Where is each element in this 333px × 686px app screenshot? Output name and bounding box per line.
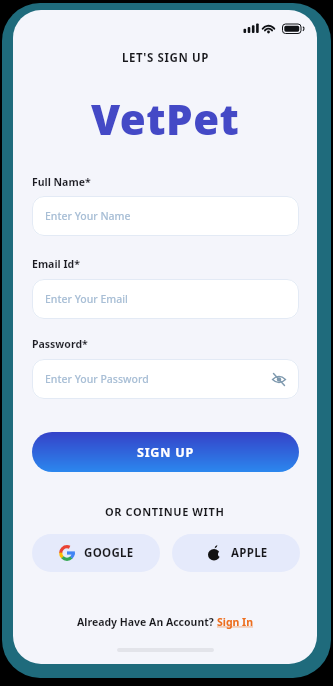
staticText: Already Have An Account? [77,615,217,629]
staticText: Enter Your Name [45,209,131,223]
staticText: GOOGLE [84,545,134,561]
staticText: LET'S SIGN UP [122,50,209,66]
staticText: APPLE [231,545,268,561]
staticText: SIGN UP [137,444,195,461]
staticText: Full Name* [32,175,91,189]
staticText: Password* [32,337,88,351]
staticText: Email Id* [32,257,80,271]
button[interactable]: Enter Your Email [32,279,299,319]
button[interactable]: SIGN UP [32,432,299,472]
staticText: OR CONTINUE WITH [105,504,225,519]
button[interactable]: Enter Your Name [32,196,299,236]
button[interactable]: GOOGLE [32,534,160,572]
button[interactable]: APPLE [172,534,300,572]
staticText: Sign In [217,615,254,629]
button[interactable]: Enter Your Password [32,359,299,399]
staticText: Enter Your Email [45,292,128,306]
staticText: Enter Your Password [45,372,149,386]
staticText: VetPet [91,90,240,147]
button[interactable]: Already Have An Account? [77,615,254,629]
